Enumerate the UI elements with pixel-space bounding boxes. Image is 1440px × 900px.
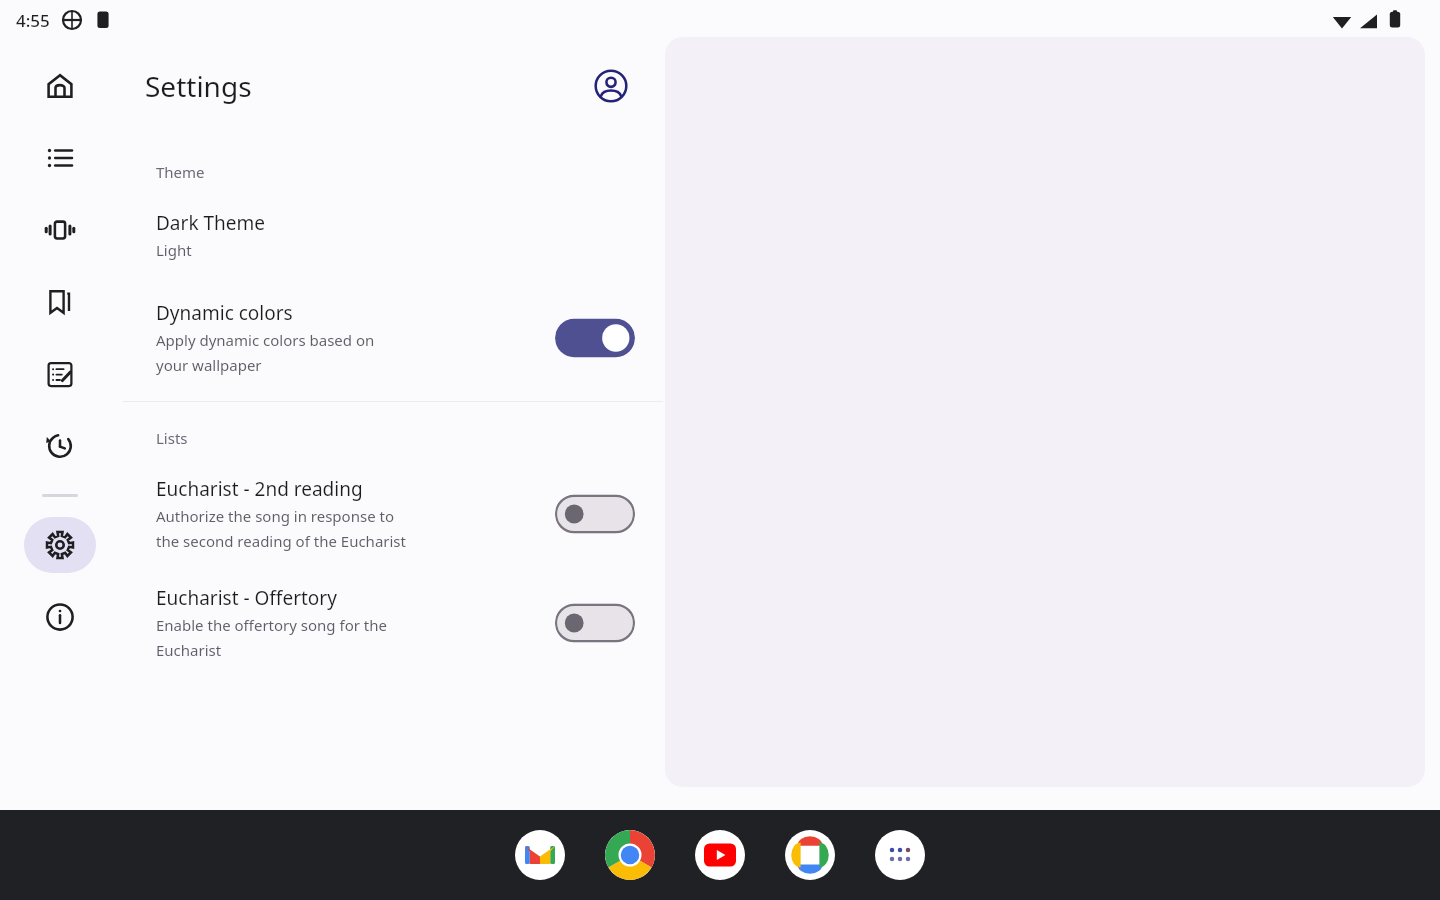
button[interactable]: Toggle off [555, 490, 635, 538]
button[interactable]: Vibration [24, 202, 96, 258]
button[interactable]: Edit list [24, 346, 96, 402]
staticText: Settings [145, 67, 252, 105]
button[interactable]: Eucharist - Offertory [123, 585, 663, 660]
staticText: Eucharist - Offertory [156, 585, 337, 611]
button[interactable]: History [24, 418, 96, 474]
staticText: Light [156, 240, 192, 260]
staticText: Authorize the song in response to the se… [156, 506, 406, 551]
staticText: Theme [156, 162, 205, 182]
button[interactable]: About [24, 589, 96, 645]
staticText: Enable the offertory song for the Euchar… [156, 615, 387, 660]
button[interactable]: Lists [24, 130, 96, 186]
button[interactable]: Dynamic colors [123, 300, 663, 375]
staticText: Lists [156, 428, 188, 448]
button[interactable]: Dark Theme [123, 210, 663, 260]
button[interactable]: Gmail [515, 830, 565, 880]
button[interactable]: Chrome [605, 830, 655, 880]
button[interactable]: YouTube [695, 830, 745, 880]
button[interactable]: All apps [875, 830, 925, 880]
button[interactable]: Toggle off [555, 599, 635, 647]
staticText: Dark Theme [156, 210, 265, 236]
button[interactable]: Bookmarks [24, 274, 96, 330]
staticText: 4:55 [16, 9, 50, 32]
staticText: Eucharist - 2nd reading [156, 476, 363, 502]
button[interactable]: Settings [24, 517, 96, 573]
button[interactable]: Home [24, 58, 96, 114]
button[interactable]: Photos [785, 830, 835, 880]
button[interactable]: Eucharist - 2nd reading [123, 476, 663, 551]
staticText: Apply dynamic colors based on your wallp… [156, 330, 375, 375]
staticText: Dynamic colors [156, 300, 293, 326]
button[interactable]: Toggle on [555, 314, 635, 362]
button[interactable]: Account [587, 62, 635, 110]
